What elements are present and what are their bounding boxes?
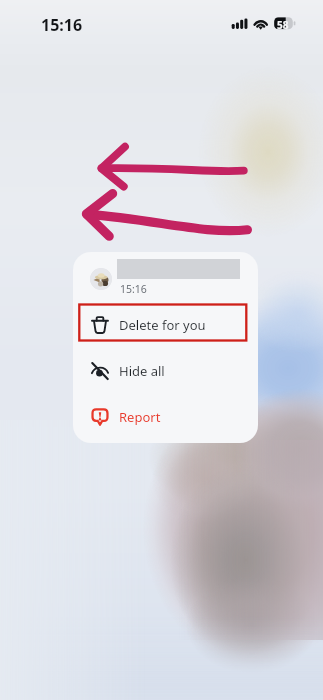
- button[interactable]: Report: [73, 394, 258, 440]
- staticText: 58: [277, 18, 289, 32]
- staticText: Delete for you: [119, 316, 206, 334]
- staticText: Hide all: [119, 362, 165, 380]
- staticText: 15:16: [120, 282, 147, 296]
- button[interactable]: Hide all: [73, 348, 258, 394]
- staticText: Report: [119, 408, 161, 426]
- button[interactable]: Delete for you: [73, 302, 258, 348]
- staticText: 15:16: [41, 14, 83, 36]
